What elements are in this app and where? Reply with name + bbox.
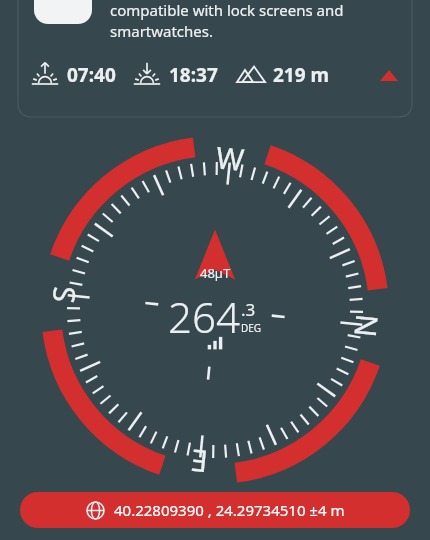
staticText: N [345, 312, 388, 339]
staticText: 07:40 [67, 62, 116, 88]
button[interactable]: Sunset [132, 60, 218, 90]
button[interactable]: Altitude rising [376, 62, 402, 88]
staticText: S [42, 284, 85, 305]
staticText: 18:37 [169, 62, 218, 88]
other: Sunrise [30, 60, 60, 90]
staticText: 48µT [200, 264, 231, 282]
staticText: DEG [241, 321, 262, 335]
staticText: .3 [241, 298, 256, 321]
button[interactable]: Altitude [236, 60, 330, 90]
button[interactable]: Location coordinates [20, 492, 410, 528]
other: Location coordinates [86, 501, 105, 520]
staticText: E [189, 440, 210, 483]
button[interactable]: Compass dial, heading 264.3 degrees [40, 135, 390, 485]
button[interactable]: Sunrise [30, 60, 116, 90]
staticText: compatible with lock screens and smartwa… [110, 0, 344, 42]
staticText: W [214, 136, 246, 180]
other: Sunset [132, 60, 162, 90]
other: Altitude [236, 60, 266, 90]
staticText: 264 [168, 288, 240, 345]
staticText: 219 m [273, 62, 330, 88]
staticText: 40.22809390 , 24.29734510 ±4 m [114, 500, 345, 520]
